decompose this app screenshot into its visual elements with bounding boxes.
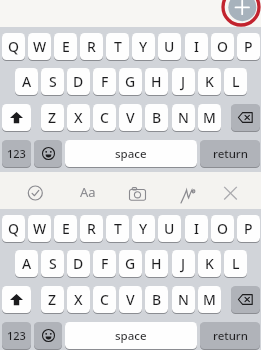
button[interactable]: 123 <box>2 322 31 350</box>
staticText: C <box>100 290 109 309</box>
button[interactable]: Q <box>2 215 25 243</box>
button[interactable] <box>219 182 242 204</box>
button[interactable]: X <box>67 104 90 132</box>
button[interactable]: B <box>145 104 168 132</box>
button[interactable] <box>126 182 150 204</box>
staticText: return <box>213 328 248 344</box>
button[interactable]: Z <box>41 286 64 314</box>
button[interactable] <box>224 0 261 26</box>
button[interactable]: R <box>80 33 103 61</box>
staticText: J <box>181 72 186 91</box>
button[interactable]: C <box>93 286 116 314</box>
button[interactable]: K <box>198 250 221 278</box>
staticText: U <box>164 219 175 238</box>
staticText: C <box>100 108 109 127</box>
button[interactable]: B <box>145 286 168 314</box>
staticText: I <box>194 37 199 56</box>
staticText: V <box>126 108 135 127</box>
button[interactable]: H <box>145 250 168 278</box>
staticText: H <box>151 72 162 91</box>
button[interactable]: return <box>200 140 260 168</box>
button[interactable]: G <box>119 68 142 96</box>
button[interactable] <box>34 140 62 168</box>
staticText: V <box>126 290 135 309</box>
button[interactable]: E <box>54 33 77 61</box>
button[interactable]: T <box>106 215 129 243</box>
staticText: F <box>101 254 109 273</box>
button[interactable]: T <box>106 33 129 61</box>
button[interactable]: Aa <box>76 181 100 203</box>
button[interactable]: space <box>65 322 197 350</box>
button[interactable]: A <box>15 68 38 96</box>
button[interactable]: N <box>172 286 195 314</box>
button[interactable] <box>231 104 260 132</box>
button[interactable]: S <box>41 250 64 278</box>
button[interactable]: V <box>119 104 142 132</box>
button[interactable]: L <box>224 68 247 96</box>
staticText: W <box>33 219 47 238</box>
button[interactable]: Z <box>41 104 64 132</box>
staticText: S <box>49 72 57 91</box>
button[interactable]: U <box>158 215 181 243</box>
staticText: D <box>73 72 84 91</box>
button[interactable]: G <box>119 250 142 278</box>
button[interactable] <box>2 104 31 132</box>
button[interactable]: V <box>119 286 142 314</box>
button[interactable] <box>34 322 62 350</box>
button[interactable]: K <box>198 68 221 96</box>
button[interactable]: N <box>172 104 195 132</box>
staticText: P <box>244 219 253 238</box>
button[interactable] <box>2 286 31 314</box>
staticText: E <box>62 219 70 238</box>
staticText: L <box>232 72 240 91</box>
button[interactable]: M <box>198 104 221 132</box>
staticText: A <box>22 254 32 273</box>
staticText: W <box>33 37 47 56</box>
button[interactable]: Q <box>2 33 25 61</box>
button[interactable]: C <box>93 104 116 132</box>
button[interactable] <box>24 182 46 204</box>
button[interactable]: O <box>211 33 234 61</box>
staticText: O <box>217 219 228 238</box>
button[interactable]: O <box>211 215 234 243</box>
staticText: 123 <box>7 328 26 343</box>
button[interactable]: E <box>54 215 77 243</box>
button[interactable] <box>177 182 201 204</box>
button[interactable]: W <box>28 33 51 61</box>
button[interactable]: F <box>93 250 116 278</box>
staticText: M <box>203 108 216 127</box>
button[interactable]: P <box>237 33 260 61</box>
button[interactable]: P <box>237 215 260 243</box>
button[interactable]: X <box>67 286 90 314</box>
button[interactable]: R <box>80 215 103 243</box>
staticText: P <box>244 37 253 56</box>
staticText: U <box>164 37 175 56</box>
staticText: return <box>213 146 248 162</box>
button[interactable]: J <box>172 250 195 278</box>
button[interactable]: J <box>172 68 195 96</box>
button[interactable]: M <box>198 286 221 314</box>
button[interactable]: W <box>28 215 51 243</box>
button[interactable]: A <box>15 250 38 278</box>
button[interactable]: Y <box>132 33 155 61</box>
staticText: space <box>115 146 147 162</box>
button[interactable]: D <box>67 250 90 278</box>
staticText: F <box>101 72 109 91</box>
button[interactable]: space <box>65 140 197 168</box>
button[interactable]: L <box>224 250 247 278</box>
staticText: I <box>194 219 199 238</box>
button[interactable]: U <box>158 33 181 61</box>
staticText: H <box>151 254 162 273</box>
button[interactable]: I <box>185 215 208 243</box>
button[interactable]: Y <box>132 215 155 243</box>
staticText: N <box>178 290 189 309</box>
button[interactable]: return <box>200 322 260 350</box>
staticText: N <box>178 108 189 127</box>
button[interactable]: 123 <box>2 140 31 168</box>
button[interactable]: S <box>41 68 64 96</box>
button[interactable]: H <box>145 68 168 96</box>
button[interactable]: F <box>93 68 116 96</box>
button[interactable]: I <box>185 33 208 61</box>
button[interactable] <box>231 286 260 314</box>
button[interactable]: D <box>67 68 90 96</box>
